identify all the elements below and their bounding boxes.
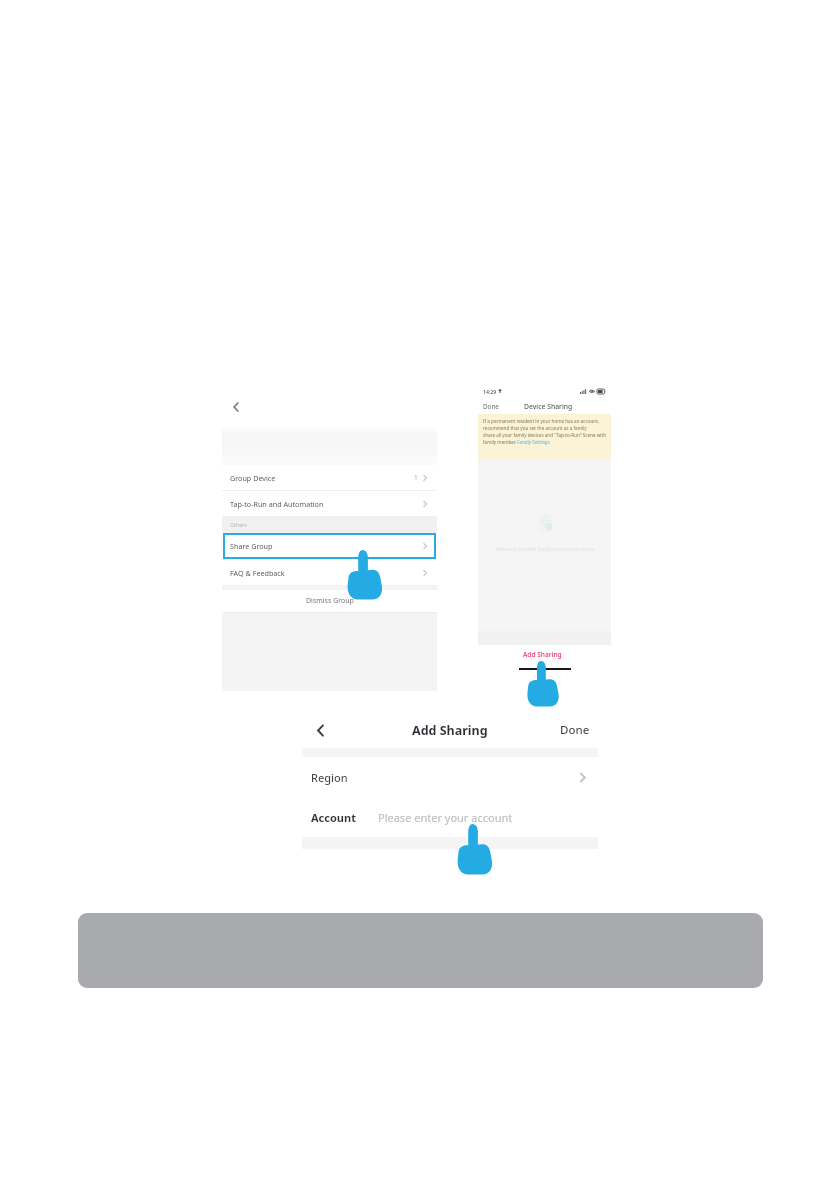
button[interactable]: Back bbox=[310, 720, 330, 740]
staticText: share all your family devices and "Tap-t… bbox=[483, 432, 606, 438]
staticText: Done bbox=[483, 402, 499, 411]
button[interactable]: Account bbox=[302, 797, 598, 837]
staticText: Tap-to-Run and Automation bbox=[230, 499, 324, 509]
staticText: Welcome to invite family members to shar… bbox=[496, 546, 594, 553]
button[interactable]: FAQ & Feedback bbox=[222, 560, 437, 585]
staticText: Please enter your account bbox=[378, 810, 513, 825]
staticText: Group Device bbox=[230, 473, 276, 483]
staticText: Device Sharing bbox=[524, 402, 573, 411]
staticText: 1 bbox=[414, 473, 418, 482]
staticText: 14:29 bbox=[483, 388, 497, 395]
staticText: Add Sharing bbox=[523, 650, 562, 659]
button[interactable]: Back bbox=[228, 399, 244, 415]
button[interactable]: Done bbox=[483, 402, 499, 411]
button[interactable]: Group Device bbox=[222, 465, 437, 490]
button[interactable]: Tap-to-Run and Automation bbox=[222, 491, 437, 516]
button[interactable]: Dismiss Group bbox=[222, 590, 437, 612]
staticText: FAQ & Feedback bbox=[230, 568, 285, 578]
staticText: Others bbox=[230, 521, 247, 528]
staticText: Dismiss Group bbox=[306, 596, 354, 606]
staticText: If a permanent resident in your home has… bbox=[483, 418, 606, 424]
button[interactable]: Share Group bbox=[222, 533, 437, 559]
button[interactable]: Done bbox=[560, 722, 590, 738]
button[interactable] bbox=[223, 533, 436, 559]
staticText: Done bbox=[560, 722, 590, 738]
staticText: Add Sharing bbox=[412, 722, 488, 739]
staticText: Family Settings bbox=[517, 439, 550, 445]
staticText: recommend that you set the account as a … bbox=[483, 425, 606, 431]
staticText: family member. bbox=[483, 439, 517, 445]
staticText: Region bbox=[311, 770, 348, 785]
button[interactable]: Region bbox=[302, 757, 598, 797]
staticText: Account bbox=[311, 810, 356, 825]
button[interactable]: Family Settings bbox=[517, 439, 550, 445]
staticText: Share Group bbox=[230, 541, 273, 551]
button[interactable] bbox=[78, 913, 763, 988]
